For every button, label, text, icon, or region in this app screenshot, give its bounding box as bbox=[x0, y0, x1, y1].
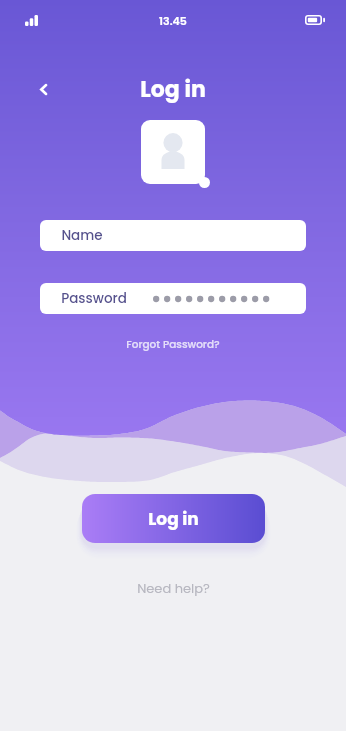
staticText: Log in bbox=[140, 74, 206, 105]
staticText: Name bbox=[61, 226, 103, 245]
button[interactable]: Forgot Password? bbox=[118, 334, 228, 355]
staticText: Need help? bbox=[137, 579, 210, 597]
button[interactable]: Need help? bbox=[129, 576, 218, 600]
other: Signal strength bbox=[25, 15, 38, 26]
button[interactable]: Profile photo bbox=[141, 120, 205, 184]
other: Battery bbox=[305, 15, 325, 25]
button[interactable]: Back bbox=[28, 74, 58, 104]
staticText: Log in bbox=[148, 507, 199, 531]
button[interactable]: Log in bbox=[82, 494, 265, 543]
button[interactable]: Password bbox=[40, 283, 306, 314]
staticText: 13.45 bbox=[159, 13, 187, 28]
button[interactable]: Name bbox=[40, 220, 306, 251]
staticText: Forgot Password? bbox=[126, 337, 220, 352]
staticText: Password bbox=[61, 289, 127, 308]
